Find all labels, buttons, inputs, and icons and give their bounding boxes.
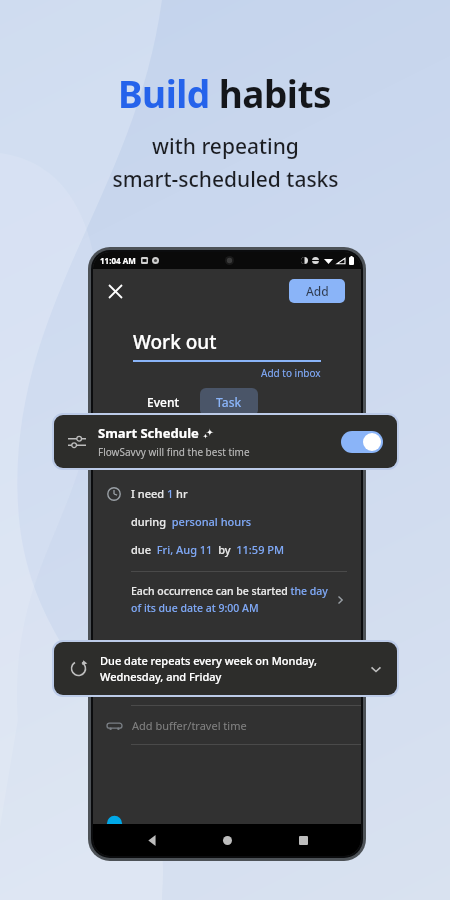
staticText: during personal hours bbox=[131, 514, 252, 529]
staticText: Due date repeats every week on Monday, W… bbox=[100, 653, 361, 684]
staticText: Add buffer/travel time bbox=[132, 718, 247, 733]
button[interactable]: Add bbox=[289, 279, 345, 303]
staticText: FlowSavvy will find the best time bbox=[98, 445, 250, 459]
staticText: smart-scheduled tasks bbox=[112, 165, 339, 194]
staticText: Build habits bbox=[118, 68, 332, 118]
button[interactable]: Add buffer/travel time bbox=[93, 706, 361, 744]
button[interactable]: Back bbox=[135, 824, 169, 856]
staticText: Event bbox=[147, 394, 180, 410]
staticText: Work out bbox=[133, 329, 217, 355]
button[interactable]: Task bbox=[200, 388, 258, 416]
button[interactable]: during personal hours bbox=[131, 514, 252, 529]
button[interactable]: Splittable bbox=[93, 667, 361, 705]
button[interactable]: Home bbox=[210, 824, 244, 856]
button[interactable]: Add to inbox bbox=[261, 366, 321, 380]
staticText: with repeating bbox=[152, 132, 299, 161]
button[interactable]: due Fri, Aug 11 by 11:59 PM bbox=[131, 542, 285, 557]
staticText: Smart Schedule bbox=[98, 424, 199, 442]
button[interactable]: Smart Schedule toggle bbox=[341, 431, 383, 453]
button[interactable]: Close bbox=[101, 277, 129, 305]
button[interactable]: Each occurrence can be started the day o… bbox=[107, 584, 347, 615]
staticText: Task bbox=[216, 394, 242, 410]
staticText: Add bbox=[306, 283, 329, 299]
button[interactable]: Recents bbox=[286, 824, 320, 856]
button[interactable]: Smart Schedule bbox=[54, 415, 397, 468]
button[interactable]: Event bbox=[133, 388, 194, 416]
button[interactable]: Due date repeats every week on Monday, W… bbox=[54, 642, 397, 695]
button[interactable]: I need 1 hr bbox=[131, 486, 188, 501]
staticText: Splittable bbox=[131, 679, 181, 694]
staticText: 11:04 AM bbox=[100, 255, 136, 266]
staticText: due Fri, Aug 11 by 11:59 PM bbox=[131, 542, 285, 557]
staticText: Each occurrence can be started the day o… bbox=[131, 584, 335, 615]
